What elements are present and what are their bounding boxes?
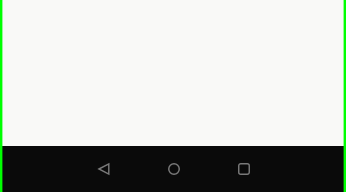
button[interactable]: Home	[143, 146, 204, 192]
button[interactable]: Back	[73, 146, 134, 192]
button[interactable]: Recent apps	[213, 146, 274, 192]
